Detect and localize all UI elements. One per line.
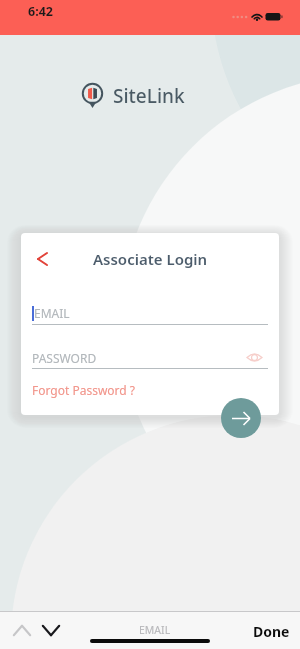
button[interactable]: Forgot Password ? [32, 382, 136, 398]
button[interactable]: Sign in [221, 398, 261, 438]
staticText: SiteLink [113, 83, 185, 109]
button[interactable]: Done [253, 622, 290, 641]
staticText: Associate Login [93, 249, 208, 269]
button[interactable]: Back [27, 244, 57, 274]
button[interactable]: Previous field [6, 617, 37, 643]
staticText: PASSWORD [32, 350, 97, 366]
staticText: EMAIL [34, 305, 70, 321]
button[interactable]: Next field [35, 617, 66, 643]
staticText: EMAIL [139, 623, 171, 637]
button[interactable]: Show password [243, 346, 265, 368]
staticText: 6:42 [28, 3, 53, 20]
